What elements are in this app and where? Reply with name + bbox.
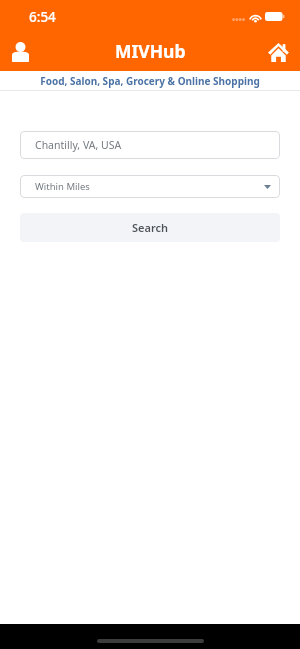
staticText: 6:54 xyxy=(29,8,56,26)
button[interactable]: Chantilly, VA, USA xyxy=(20,131,280,159)
button[interactable]: Search xyxy=(20,213,280,242)
staticText: Search xyxy=(132,220,169,235)
button[interactable]: Within Miles xyxy=(20,175,280,198)
staticText: Food, Salon, Spa, Grocery & Online Shopp… xyxy=(40,74,260,88)
staticText: Chantilly, VA, USA xyxy=(35,138,122,152)
button[interactable]: Account xyxy=(3,35,37,69)
button[interactable]: Home xyxy=(261,35,295,69)
staticText: MIVHub xyxy=(115,39,186,63)
staticText: Within Miles xyxy=(35,180,90,193)
